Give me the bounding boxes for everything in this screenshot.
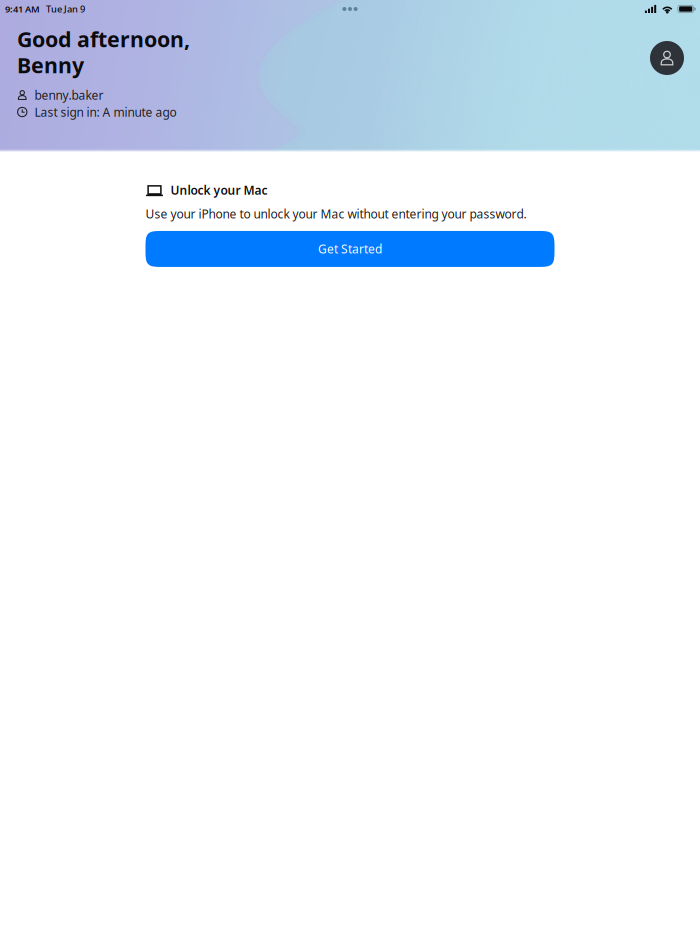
staticText: Last sign in: A minute ago: [34, 104, 176, 120]
staticText: Unlock your Mac: [170, 182, 267, 198]
staticText: Use your iPhone to unlock your Mac witho…: [145, 206, 526, 222]
button[interactable]: Account: [650, 41, 684, 75]
staticText: 9:41 AM: [5, 3, 40, 15]
staticText: Get Started: [318, 241, 382, 257]
staticText: Good afternoon,: [17, 25, 190, 53]
button[interactable]: Get Started: [145, 231, 554, 267]
staticText: Benny: [17, 51, 84, 79]
staticText: Tue Jan 9: [46, 3, 85, 15]
staticText: benny.baker: [34, 87, 103, 103]
